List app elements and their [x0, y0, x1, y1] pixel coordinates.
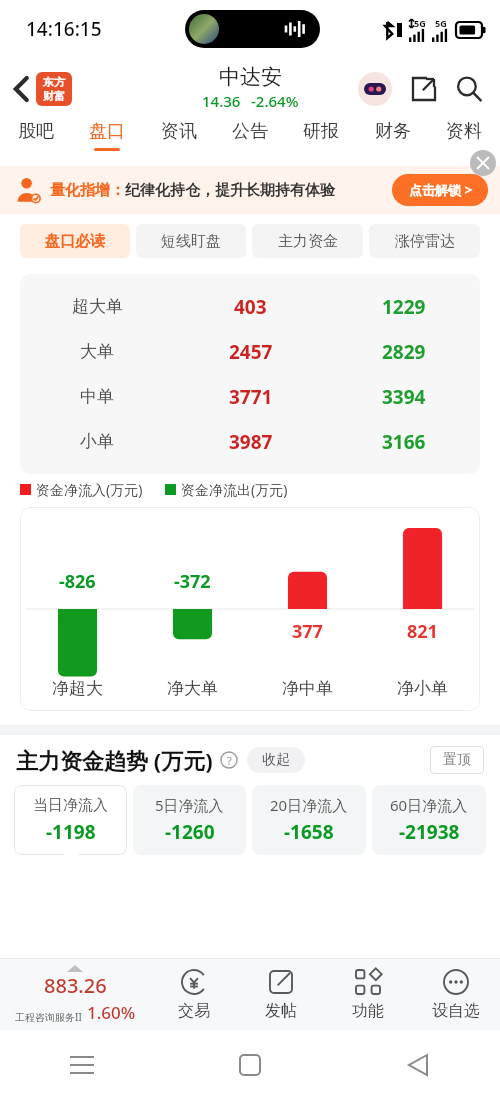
staticText: 交易 [178, 1001, 210, 1021]
button[interactable]: 量化指增： [0, 166, 500, 214]
button[interactable]: 20日净流入 [252, 785, 366, 855]
button[interactable]: 资讯 [157, 120, 201, 151]
staticText: 3987 [229, 429, 273, 455]
button[interactable]: 发帖 [237, 968, 324, 1021]
button[interactable]: Back [8, 70, 35, 108]
staticText: 短线盯盘 [161, 232, 221, 251]
button[interactable]: 主力资金 [252, 224, 363, 258]
staticText: 主力资金趋势 (万元) [16, 745, 213, 775]
staticText: 377 [292, 619, 323, 644]
staticText: 1.60% [87, 1001, 136, 1024]
staticText: -21938 [399, 819, 460, 845]
button[interactable]: 5日净流入 [133, 785, 246, 855]
staticText: 盘口 [89, 120, 125, 143]
staticText: 5G [435, 17, 447, 29]
staticText: 盘口必读 [45, 232, 105, 251]
button[interactable]: 盘口必读 [20, 224, 130, 258]
staticText: 净小单 [397, 678, 448, 699]
button[interactable]: Close [470, 150, 496, 176]
button[interactable]: 点击解锁 [392, 174, 488, 206]
staticText: 置顶 [443, 751, 471, 769]
staticText: 东方 [43, 75, 65, 89]
staticText: 功能 [352, 1001, 384, 1021]
button[interactable]: 交易 [150, 968, 237, 1021]
button[interactable]: 东方财富 [36, 72, 72, 106]
staticText: 点击解锁 [409, 182, 461, 198]
staticText: 净超大 [52, 678, 103, 699]
button[interactable]: 883.26 [0, 965, 150, 1024]
button[interactable]: 置顶 [430, 746, 484, 774]
staticText: 883.26 [44, 972, 107, 999]
staticText: 5G [414, 17, 426, 29]
staticText: 收起 [262, 751, 290, 769]
button[interactable]: Home [228, 1043, 272, 1087]
staticText: 设自选 [432, 1001, 480, 1021]
staticText: 821 [407, 619, 438, 644]
staticText: 研报 [303, 120, 339, 143]
button[interactable]: Recents [60, 1043, 104, 1087]
staticText: 当日净流入 [33, 796, 108, 815]
button[interactable]: 涨停雷达 [369, 224, 480, 258]
staticText: 净中单 [282, 678, 333, 699]
staticText: 大单 [80, 341, 114, 362]
staticText: 5日净流入 [155, 795, 224, 815]
staticText: 主力资金 [278, 232, 338, 251]
button[interactable]: Help [219, 750, 239, 770]
staticText: 涨停雷达 [395, 232, 455, 251]
button[interactable]: 短线盯盘 [136, 224, 246, 258]
staticText: 403 [234, 294, 267, 320]
staticText: 发帖 [265, 1001, 297, 1021]
staticText: -372 [174, 569, 211, 594]
staticText: 中达安 [219, 64, 282, 90]
staticText: 小单 [80, 431, 114, 452]
staticText: 60日净流入 [390, 795, 468, 815]
staticText: ? [227, 753, 232, 768]
staticText: 3394 [382, 384, 426, 410]
staticText: 14:16:15 [26, 16, 102, 42]
button[interactable]: 盘口 [85, 120, 129, 151]
staticText: -2.64% [251, 91, 299, 111]
staticText: 资料 [446, 120, 482, 143]
staticText: 20日净流入 [270, 795, 348, 815]
staticText: 2457 [229, 339, 273, 365]
staticText: 财务 [375, 120, 411, 143]
staticText: 3166 [382, 429, 426, 455]
button[interactable]: 功能 [324, 968, 412, 1021]
staticText: 3771 [229, 384, 273, 410]
staticText: 净大单 [167, 678, 218, 699]
staticText: 量化指增： [50, 181, 125, 200]
staticText: -1198 [46, 819, 96, 845]
staticText: 工程咨询服务II [15, 1010, 82, 1024]
staticText: -1260 [165, 819, 215, 845]
button[interactable]: Share [408, 73, 440, 105]
staticText: 资金净流入(万元) [36, 480, 143, 499]
button[interactable]: Back [396, 1043, 440, 1087]
button[interactable]: 财务 [371, 120, 415, 151]
staticText: 财富 [43, 89, 65, 103]
button[interactable]: 当日净流入 [14, 785, 127, 855]
staticText: 中单 [80, 386, 114, 407]
staticText: -1658 [284, 819, 334, 845]
button[interactable]: AI Assistant [358, 72, 392, 106]
staticText: 公告 [232, 120, 268, 143]
staticText: 股吧 [18, 120, 54, 143]
button[interactable]: 60日净流入 [372, 785, 486, 855]
staticText: 资讯 [161, 120, 197, 143]
staticText: 纪律化持仓，提升长期持有体验 [125, 181, 335, 200]
staticText: 1229 [382, 294, 426, 320]
button[interactable]: 股吧 [14, 120, 58, 151]
button[interactable]: 公告 [228, 120, 272, 151]
staticText: 2829 [382, 339, 426, 365]
staticText: -826 [59, 569, 96, 594]
staticText: 资金净流出(万元) [181, 480, 288, 499]
staticText: 14.36 [202, 91, 241, 111]
button[interactable]: 收起 [247, 747, 305, 773]
button[interactable]: Search [452, 72, 486, 106]
button[interactable]: 研报 [299, 120, 343, 151]
button[interactable]: 设自选 [412, 968, 500, 1021]
staticText: 超大单 [72, 296, 123, 317]
button[interactable]: 资料 [442, 120, 486, 151]
